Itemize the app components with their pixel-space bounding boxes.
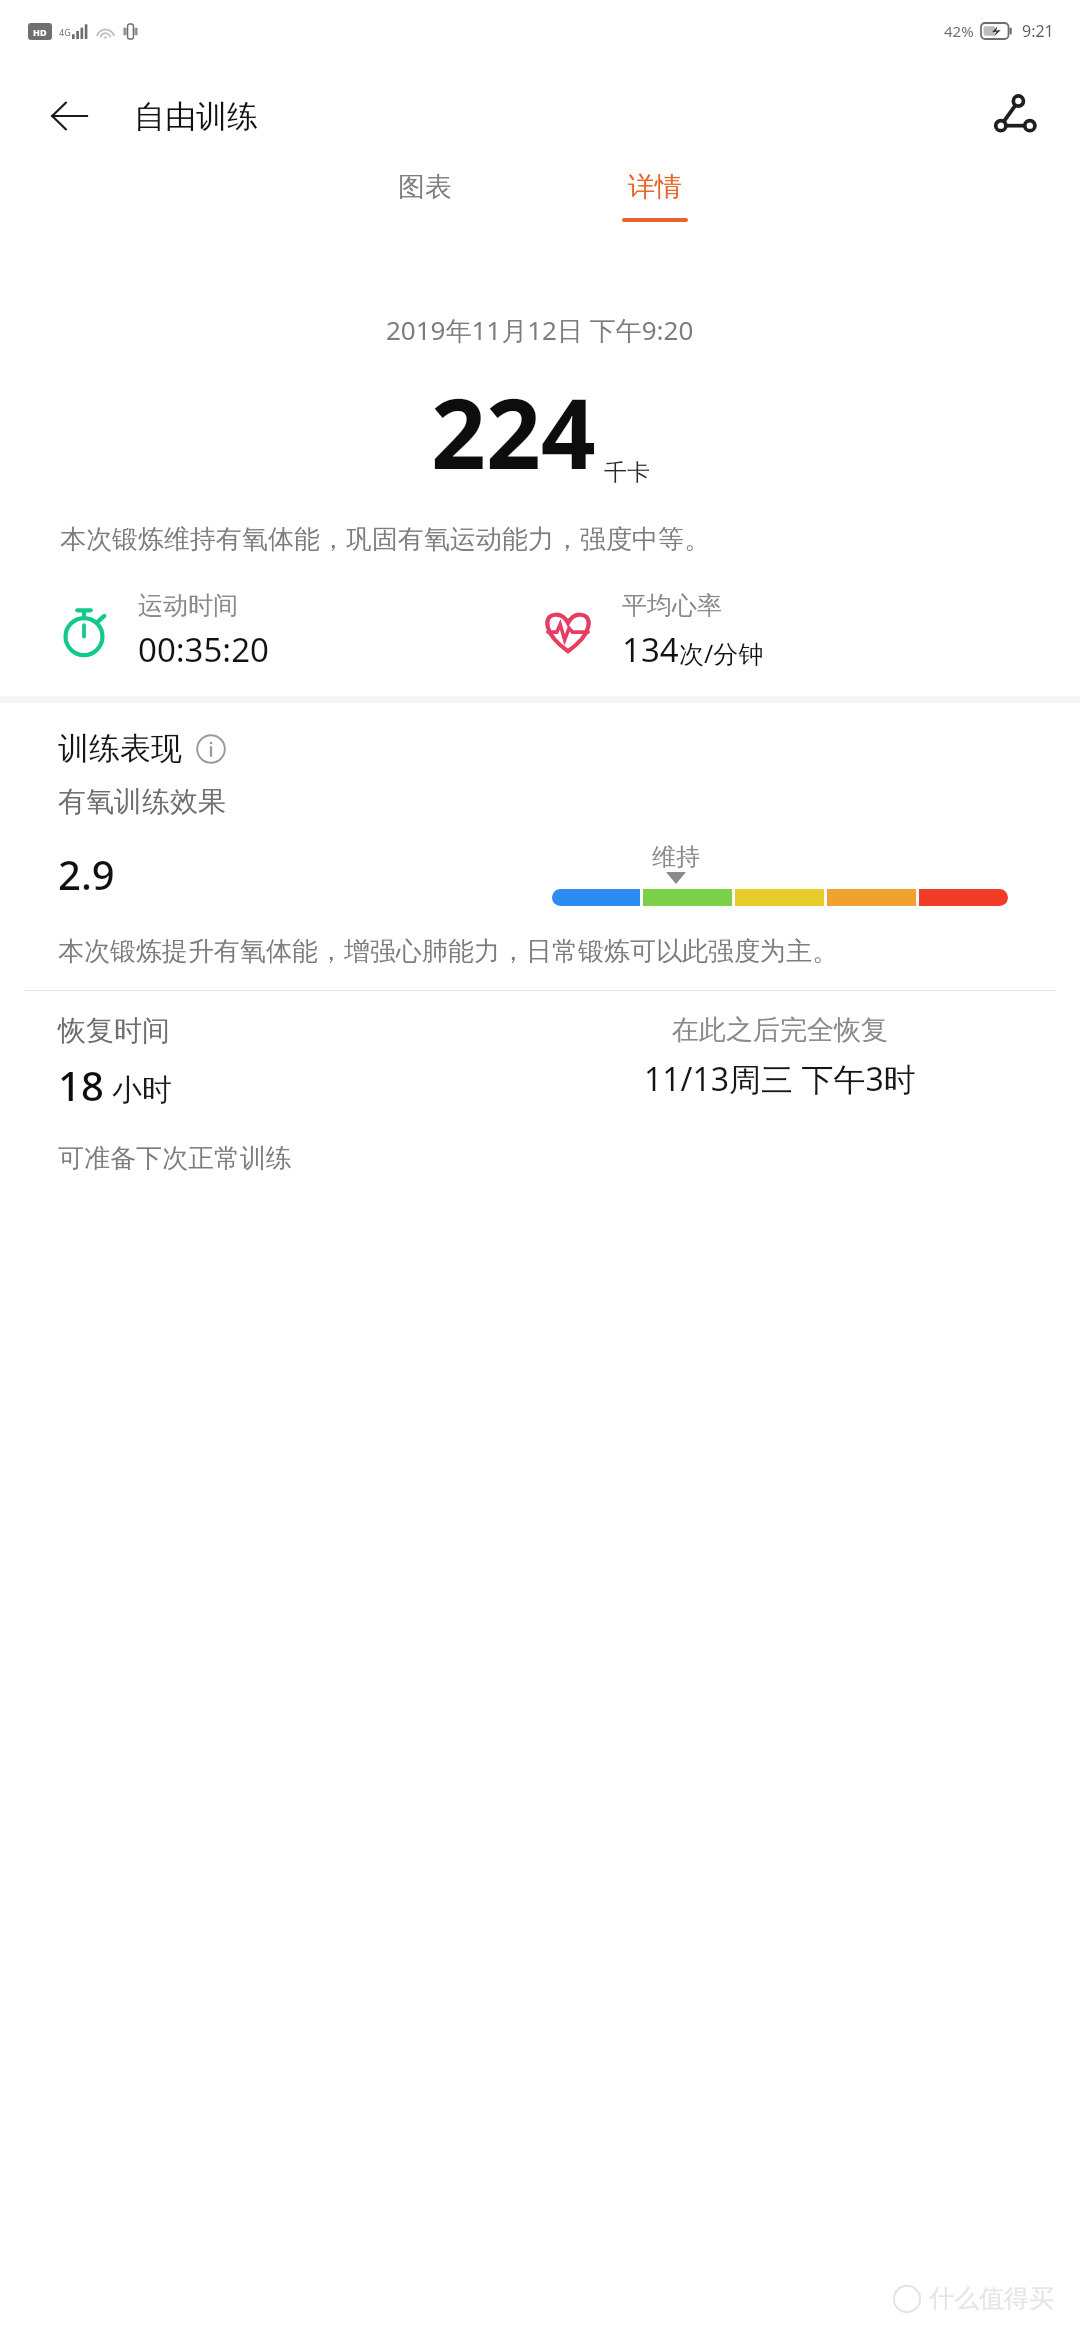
- staticText: 维持: [652, 842, 700, 872]
- staticText: 恢复时间: [58, 1013, 170, 1048]
- staticText: 18: [58, 1058, 104, 1112]
- staticText: 9:21: [1022, 20, 1054, 42]
- staticText: 可准备下次正常训练: [58, 1142, 292, 1175]
- staticText: 训练表现: [58, 729, 182, 768]
- staticText: 有氧训练效果: [58, 784, 226, 819]
- staticText: 2.9: [58, 847, 115, 901]
- staticText: HD: [33, 26, 47, 38]
- staticText: 什么值得买: [929, 2283, 1054, 2314]
- staticText: 次/分钟: [679, 636, 764, 670]
- button[interactable]: 详情: [540, 170, 770, 260]
- staticText: 4G: [59, 26, 71, 38]
- staticText: 2019年11月12日 下午9:20: [386, 312, 694, 348]
- button[interactable]: 图表: [310, 170, 540, 260]
- button[interactable]: Share: [982, 84, 1046, 148]
- staticText: 自由训练: [134, 97, 258, 136]
- staticText: 134: [622, 627, 679, 672]
- staticText: 224: [431, 366, 596, 497]
- staticText: 详情: [628, 170, 682, 204]
- staticText: 小时: [112, 1071, 172, 1109]
- staticText: 运动时间: [138, 590, 238, 621]
- button[interactable]: 训练表现: [58, 729, 1080, 768]
- button[interactable]: 运动时间: [56, 590, 540, 672]
- staticText: 11/13周三 下午3时: [644, 1057, 916, 1101]
- staticText: 图表: [398, 170, 452, 204]
- button[interactable]: Back: [40, 87, 98, 145]
- staticText: 平均心率: [622, 590, 722, 621]
- staticText: 本次锻炼维持有氧体能，巩固有氧运动能力，强度中等。: [60, 523, 1020, 556]
- staticText: 42%: [944, 21, 974, 41]
- staticText: 在此之后完全恢复: [672, 1013, 888, 1047]
- staticText: 本次锻炼提升有氧体能，增强心肺能力，日常锻炼可以此强度为主。: [58, 935, 1022, 968]
- staticText: 千卡: [604, 458, 650, 487]
- button[interactable]: 平均心率: [540, 590, 1080, 672]
- staticText: 00:35:20: [138, 627, 269, 672]
